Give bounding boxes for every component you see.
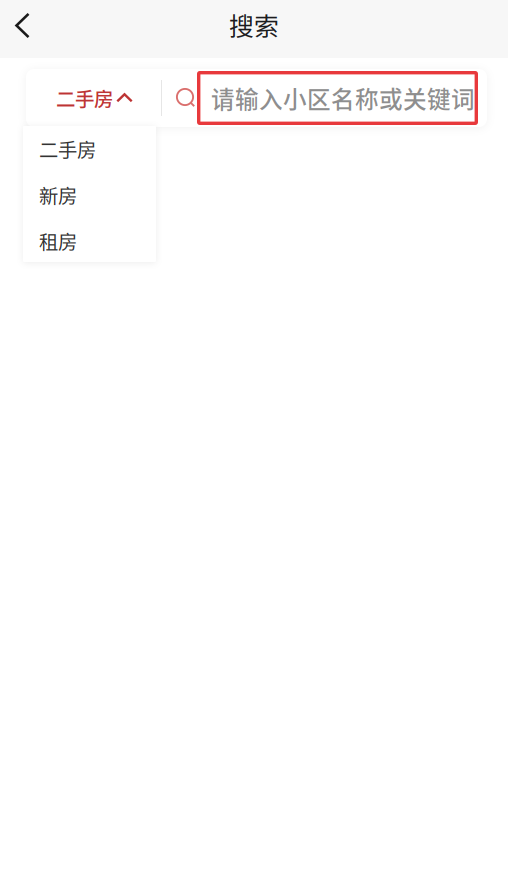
staticText: 二手房 [56, 84, 113, 112]
button[interactable]: Back [0, 0, 58, 58]
staticText: 新房 [39, 181, 77, 209]
button[interactable]: 请输入小区名称或关键词 [197, 71, 478, 125]
button[interactable]: 租房 [23, 218, 156, 264]
button[interactable]: 二手房 [26, 69, 161, 127]
button[interactable]: 二手房 [23, 126, 156, 172]
staticText: 租房 [39, 227, 77, 255]
button[interactable]: 新房 [23, 172, 156, 218]
staticText: 搜索 [229, 7, 279, 43]
button[interactable]: Search [162, 69, 197, 127]
staticText: 请输入小区名称或关键词 [211, 81, 475, 115]
staticText: 二手房 [39, 135, 96, 163]
